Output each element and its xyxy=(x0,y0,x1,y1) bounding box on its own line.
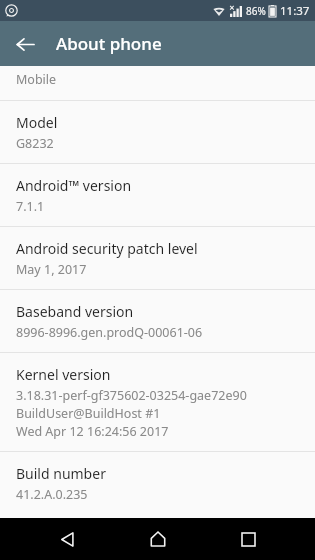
staticText: 8996-8996.gen.prodQ-00061-06 xyxy=(16,324,203,341)
staticText: 86% xyxy=(246,4,266,18)
button[interactable]: Model xyxy=(0,101,315,163)
staticText: Kernel version xyxy=(16,365,111,384)
button[interactable]: Recent apps xyxy=(224,518,272,560)
button[interactable]: Back xyxy=(43,518,91,560)
staticText: Android security patch level xyxy=(16,239,198,258)
button[interactable]: Home xyxy=(134,518,182,560)
button[interactable]: Android™ version xyxy=(0,164,315,226)
button[interactable]: Android security patch level xyxy=(0,227,315,289)
staticText: Android™ version xyxy=(16,176,132,195)
button[interactable]: Build number xyxy=(0,452,315,514)
staticText: Build number xyxy=(16,464,106,483)
staticText: 41.2.A.0.235 xyxy=(16,486,88,503)
staticText: Baseband version xyxy=(16,302,134,321)
staticText: G8232 xyxy=(16,135,54,152)
staticText: 7.1.1 xyxy=(16,198,45,215)
staticText: 3.18.31-perf-gf375602-03254-gae72e90 xyxy=(16,387,247,404)
button[interactable]: Back xyxy=(8,27,42,61)
staticText: 11:37 xyxy=(280,3,310,19)
button[interactable]: Kernel version xyxy=(0,353,315,451)
staticText: Wed Apr 12 16:24:56 2017 xyxy=(16,423,169,440)
button[interactable]: Baseband version xyxy=(0,290,315,352)
staticText: Model xyxy=(16,113,58,132)
staticText: May 1, 2017 xyxy=(16,261,87,278)
button[interactable]: Mobile xyxy=(0,66,315,100)
staticText: Mobile xyxy=(16,71,57,88)
staticText: About phone xyxy=(56,32,162,55)
staticText: BuildUser@BuildHost #1 xyxy=(16,405,161,422)
